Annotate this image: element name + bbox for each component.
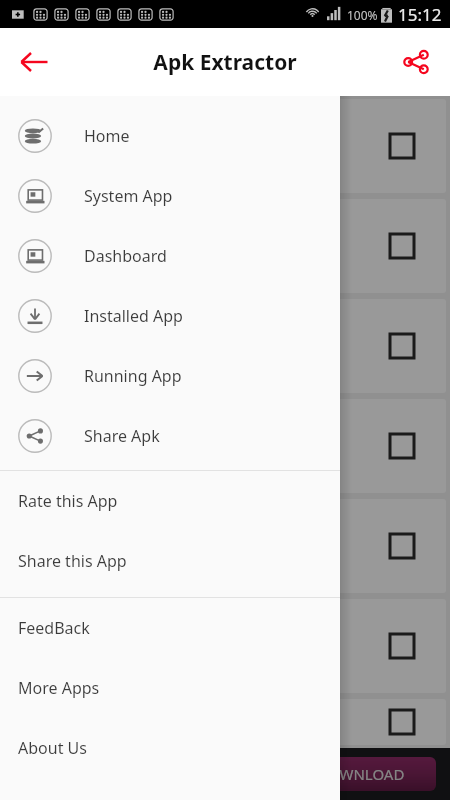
button[interactable] [4, 699, 446, 745]
staticText: Home [84, 125, 130, 147]
staticText: FeedBack [18, 617, 90, 639]
button[interactable]: Running App [0, 346, 340, 406]
button[interactable]: About Us [0, 718, 340, 778]
staticText: More Apps [18, 677, 100, 699]
button[interactable]: DOWNLOAD [286, 757, 436, 791]
button[interactable]: FeedBack [0, 598, 340, 658]
button[interactable]: Share Apk [0, 406, 340, 466]
staticText: Dashboard [84, 245, 167, 267]
staticText: Share this App [18, 550, 127, 572]
button[interactable]: Rate this App [0, 471, 340, 531]
button[interactable]: System App [0, 166, 340, 226]
button[interactable] [4, 99, 446, 193]
button[interactable]: Back [8, 36, 60, 88]
button[interactable] [4, 199, 446, 293]
staticText: 100% [347, 7, 378, 23]
button[interactable] [4, 499, 446, 593]
button[interactable]: Share [392, 38, 440, 86]
staticText: Share Apk [84, 425, 160, 447]
button[interactable]: Home [0, 106, 340, 166]
button[interactable]: Share this App [0, 531, 340, 591]
button[interactable] [4, 399, 446, 493]
button[interactable]: More Apps [0, 658, 340, 718]
button[interactable]: Dashboard [0, 226, 340, 286]
button[interactable] [4, 599, 446, 693]
button[interactable]: Installed App [0, 286, 340, 346]
staticText: 15:12 [398, 3, 442, 26]
staticText: Rate this App [18, 490, 118, 512]
button[interactable] [4, 299, 446, 393]
staticText: Installed App [84, 305, 183, 327]
staticText: Apk Extractor [153, 48, 297, 77]
staticText: About Us [18, 737, 87, 759]
staticText: DOWNLOAD [317, 764, 405, 784]
staticText: System App [84, 185, 173, 207]
staticText: Running App [84, 365, 182, 387]
